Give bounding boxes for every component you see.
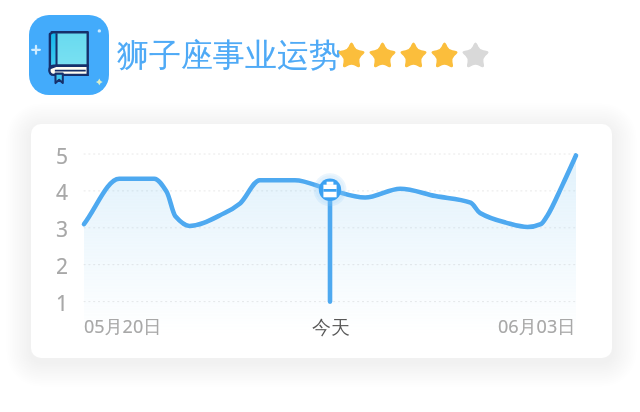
staticText: 5	[56, 142, 69, 170]
button[interactable]: Filled star	[367, 40, 398, 71]
button[interactable]: 5	[31, 124, 612, 358]
staticText: 1	[56, 289, 69, 317]
staticText: 05月20日	[84, 314, 162, 339]
staticText: 4	[56, 178, 69, 206]
button[interactable]: Filled star	[398, 40, 429, 71]
button[interactable]: Filled star	[429, 40, 460, 71]
button[interactable]: Horoscope book	[29, 15, 109, 95]
staticText: 今天	[312, 316, 350, 340]
button[interactable]: Filled star	[336, 40, 367, 71]
staticText: 3	[56, 215, 69, 243]
button[interactable]: Empty star	[460, 40, 491, 71]
staticText: 2	[56, 252, 69, 280]
staticText: 06月03日	[498, 314, 576, 339]
button[interactable]: 狮子座事业运势	[117, 35, 341, 75]
